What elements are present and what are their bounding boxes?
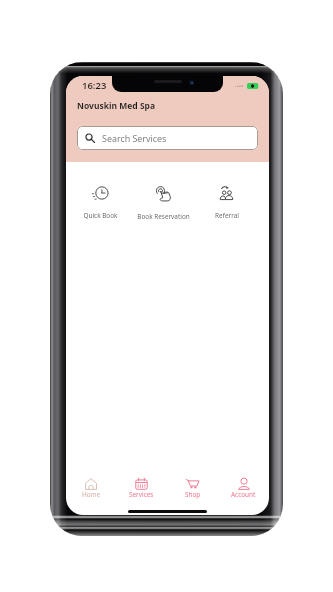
button[interactable]: Shop <box>167 478 218 499</box>
button[interactable]: Search Services <box>77 126 258 150</box>
staticText: Shop <box>185 490 201 499</box>
staticText: Book Reservation <box>137 212 190 221</box>
button[interactable]: Services <box>116 478 167 499</box>
staticText: Quick Book <box>83 211 118 220</box>
button[interactable]: Account <box>218 478 269 499</box>
staticText: Services <box>129 490 154 499</box>
staticText: 16:23 <box>82 79 107 92</box>
button[interactable]: Book Reservation <box>130 186 197 221</box>
staticText: Account <box>231 490 256 499</box>
staticText: Novuskin Med Spa <box>77 100 156 112</box>
staticText: Referral <box>215 211 239 220</box>
button[interactable]: Home <box>66 478 116 499</box>
button[interactable]: Referral <box>193 186 260 220</box>
staticText: Home <box>82 490 101 499</box>
staticText: Search Services <box>102 132 167 144</box>
button[interactable]: Quick Book <box>67 186 134 220</box>
